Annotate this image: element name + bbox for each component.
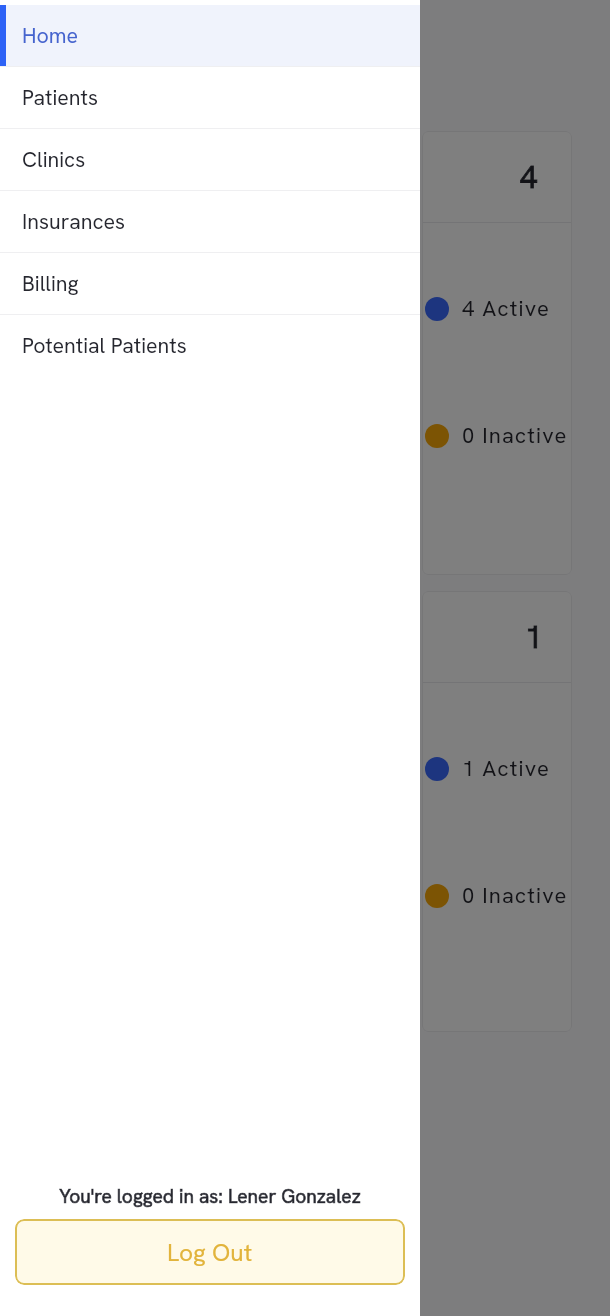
button[interactable]: Home	[0, 5, 420, 67]
staticText: 1	[525, 617, 541, 657]
staticText: 1 Active	[462, 754, 550, 783]
staticText: Log Out	[167, 1236, 253, 1268]
button[interactable]: Potential Patients	[0, 315, 420, 377]
button[interactable]: Clinics	[0, 129, 420, 191]
staticText: Potential Patients	[22, 332, 187, 360]
staticText: 4 Active	[462, 294, 550, 323]
staticText: Insurances	[22, 208, 126, 236]
button[interactable]: Log Out	[15, 1219, 405, 1285]
staticText: 0 Inactive	[462, 421, 568, 450]
staticText: Clinics	[22, 146, 86, 174]
staticText: 4	[520, 157, 536, 197]
staticText: 1	[525, 617, 541, 657]
staticText: You're logged in as: Lener Gonzalez	[0, 1184, 420, 1209]
staticText: Home	[22, 22, 79, 50]
staticText: Patients	[22, 84, 99, 112]
staticText: Billing	[22, 270, 79, 298]
button[interactable]: Insurances	[0, 191, 420, 253]
staticText: You're logged in as: Lener Gonzalez	[0, 1184, 420, 1209]
button[interactable]: Patients	[0, 67, 420, 129]
staticText: 0 Inactive	[462, 881, 568, 910]
staticText: 4	[520, 157, 536, 197]
button[interactable]: Billing	[0, 253, 420, 315]
